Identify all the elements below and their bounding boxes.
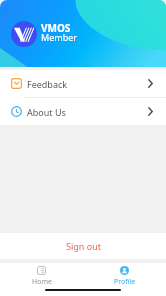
button[interactable]: About Us bbox=[0, 98, 166, 125]
button[interactable]: Home bbox=[0, 263, 83, 296]
staticText: Home bbox=[32, 277, 52, 287]
staticText: Member bbox=[41, 31, 77, 43]
button[interactable]: Profile bbox=[83, 263, 166, 296]
button[interactable]: Sign out bbox=[0, 233, 166, 259]
staticText: About Us bbox=[27, 106, 66, 118]
staticText: Profile bbox=[114, 277, 136, 287]
staticText: VMOS bbox=[41, 21, 71, 35]
button[interactable]: Feedback bbox=[0, 70, 166, 97]
staticText: Feedback bbox=[27, 78, 68, 90]
staticText: Sign out bbox=[66, 240, 101, 252]
